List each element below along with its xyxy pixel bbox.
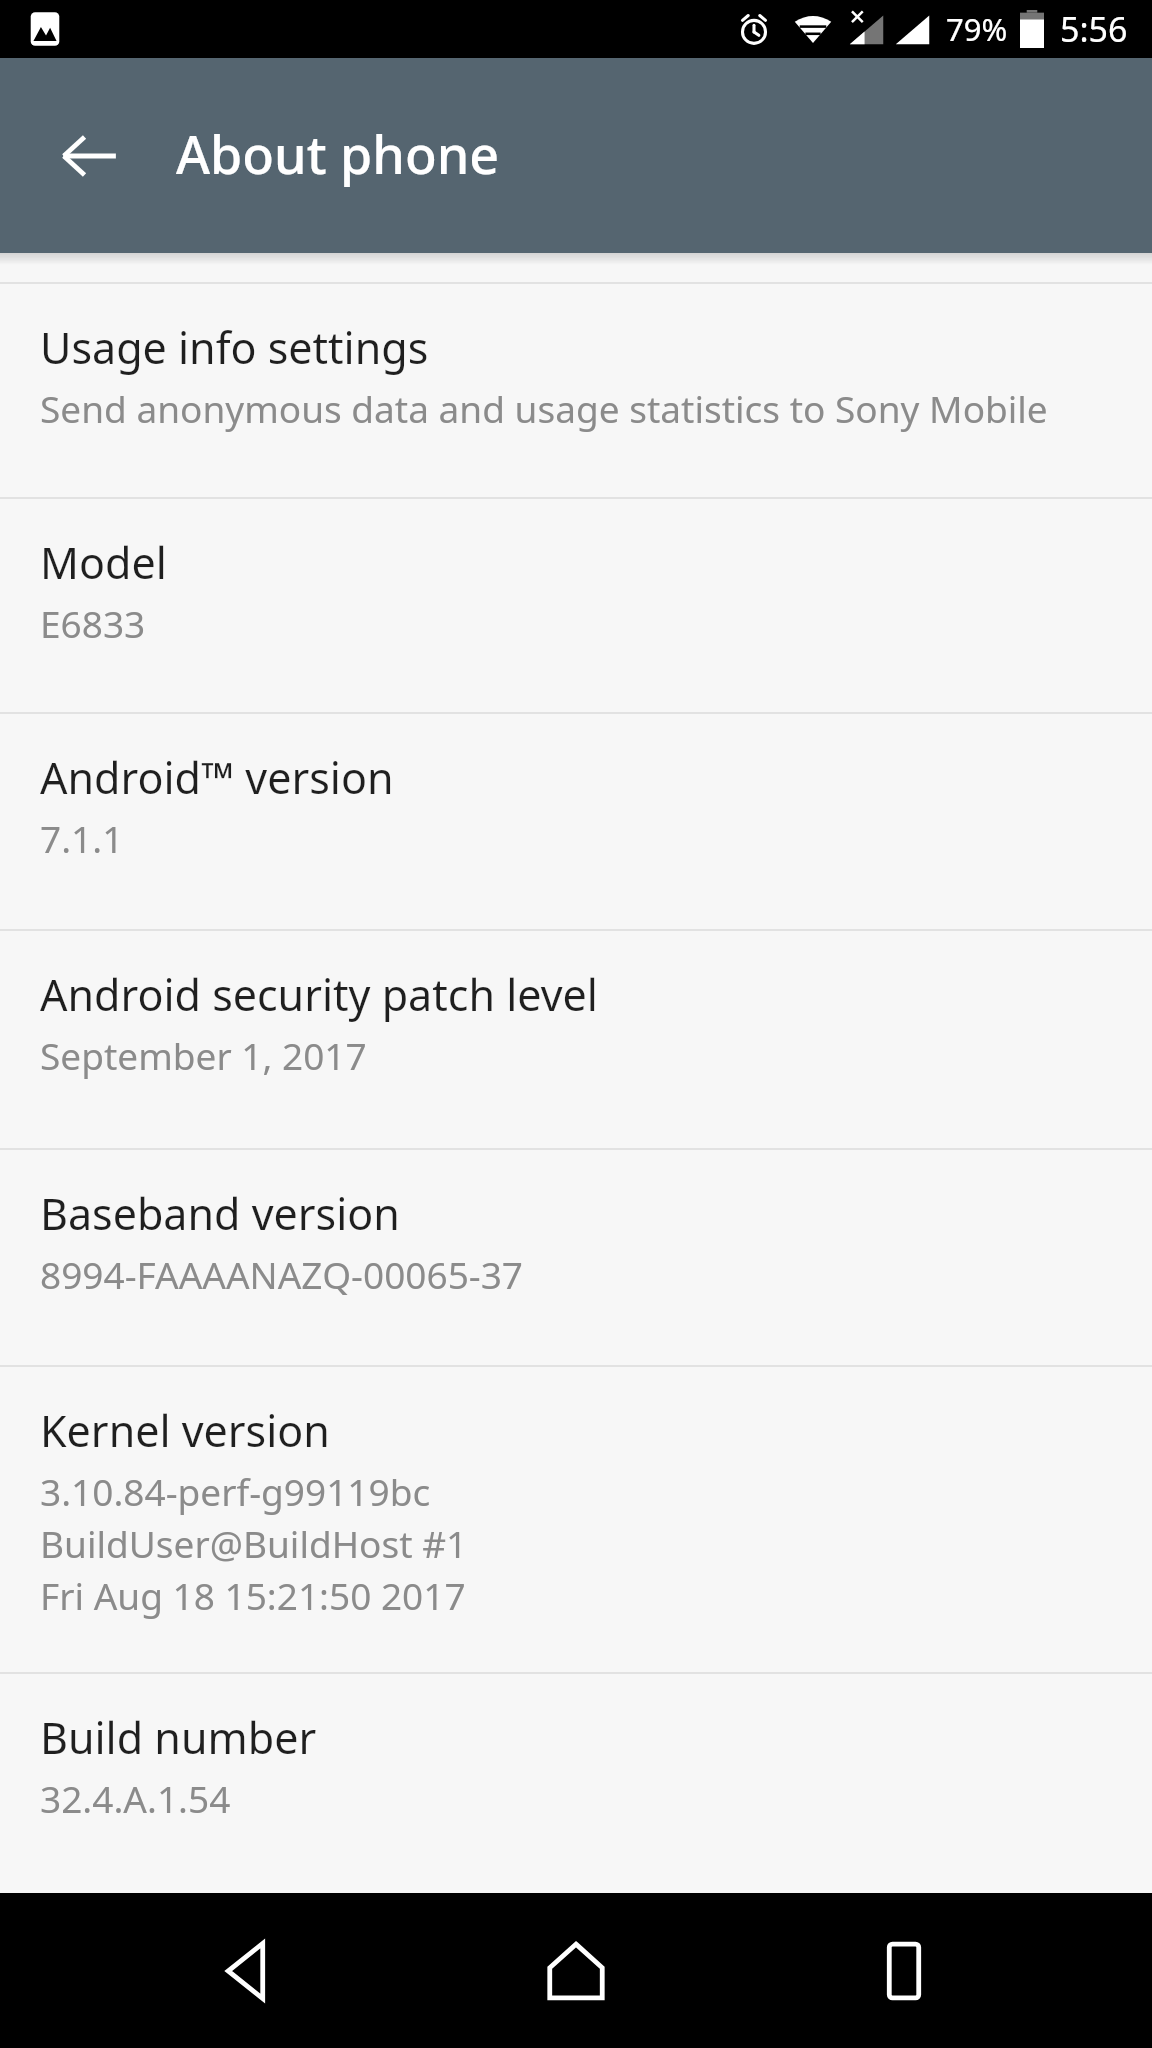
staticText: 32.4.A.1.54 xyxy=(40,1773,231,1823)
button[interactable]: Recent apps xyxy=(824,1893,984,2048)
button[interactable]: Android security patch level xyxy=(0,931,1152,1148)
staticText: 5:56 xyxy=(1060,6,1128,52)
staticText: 7.1.1 xyxy=(40,813,124,863)
button[interactable]: Back xyxy=(168,1893,328,2048)
staticText: Fri Aug 18 15:21:50 2017 xyxy=(40,1570,466,1620)
staticText: Model xyxy=(40,533,167,592)
staticText: BuildUser@BuildHost #1 xyxy=(40,1518,468,1568)
staticText: 3.10.84-perf-g99119bc xyxy=(40,1466,431,1516)
button[interactable]: Baseband version xyxy=(0,1150,1152,1365)
button[interactable]: Back xyxy=(40,107,138,205)
button[interactable]: Build number xyxy=(0,1674,1152,1893)
staticText: 8994-FAAAANAZQ-00065-37 xyxy=(40,1249,524,1299)
button[interactable]: Home xyxy=(496,1893,656,2048)
staticText: Kernel version xyxy=(40,1401,330,1460)
staticText: E6833 xyxy=(40,598,146,648)
button[interactable]: Usage info settings xyxy=(0,284,1152,497)
button[interactable]: Android™ version xyxy=(0,714,1152,929)
staticText: Android™ version xyxy=(40,748,394,807)
staticText: Send anonymous data and usage statistics… xyxy=(40,383,1048,433)
staticText: September 1, 2017 xyxy=(40,1030,367,1080)
staticText: Baseband version xyxy=(40,1184,400,1243)
staticText: About phone xyxy=(176,118,500,189)
staticText: Build number xyxy=(40,1708,317,1767)
button[interactable]: Kernel version xyxy=(0,1367,1152,1672)
staticText: 79% xyxy=(946,8,1008,50)
staticText: Android security patch level xyxy=(40,965,598,1024)
button[interactable]: Model xyxy=(0,499,1152,712)
staticText: Usage info settings xyxy=(40,318,429,377)
